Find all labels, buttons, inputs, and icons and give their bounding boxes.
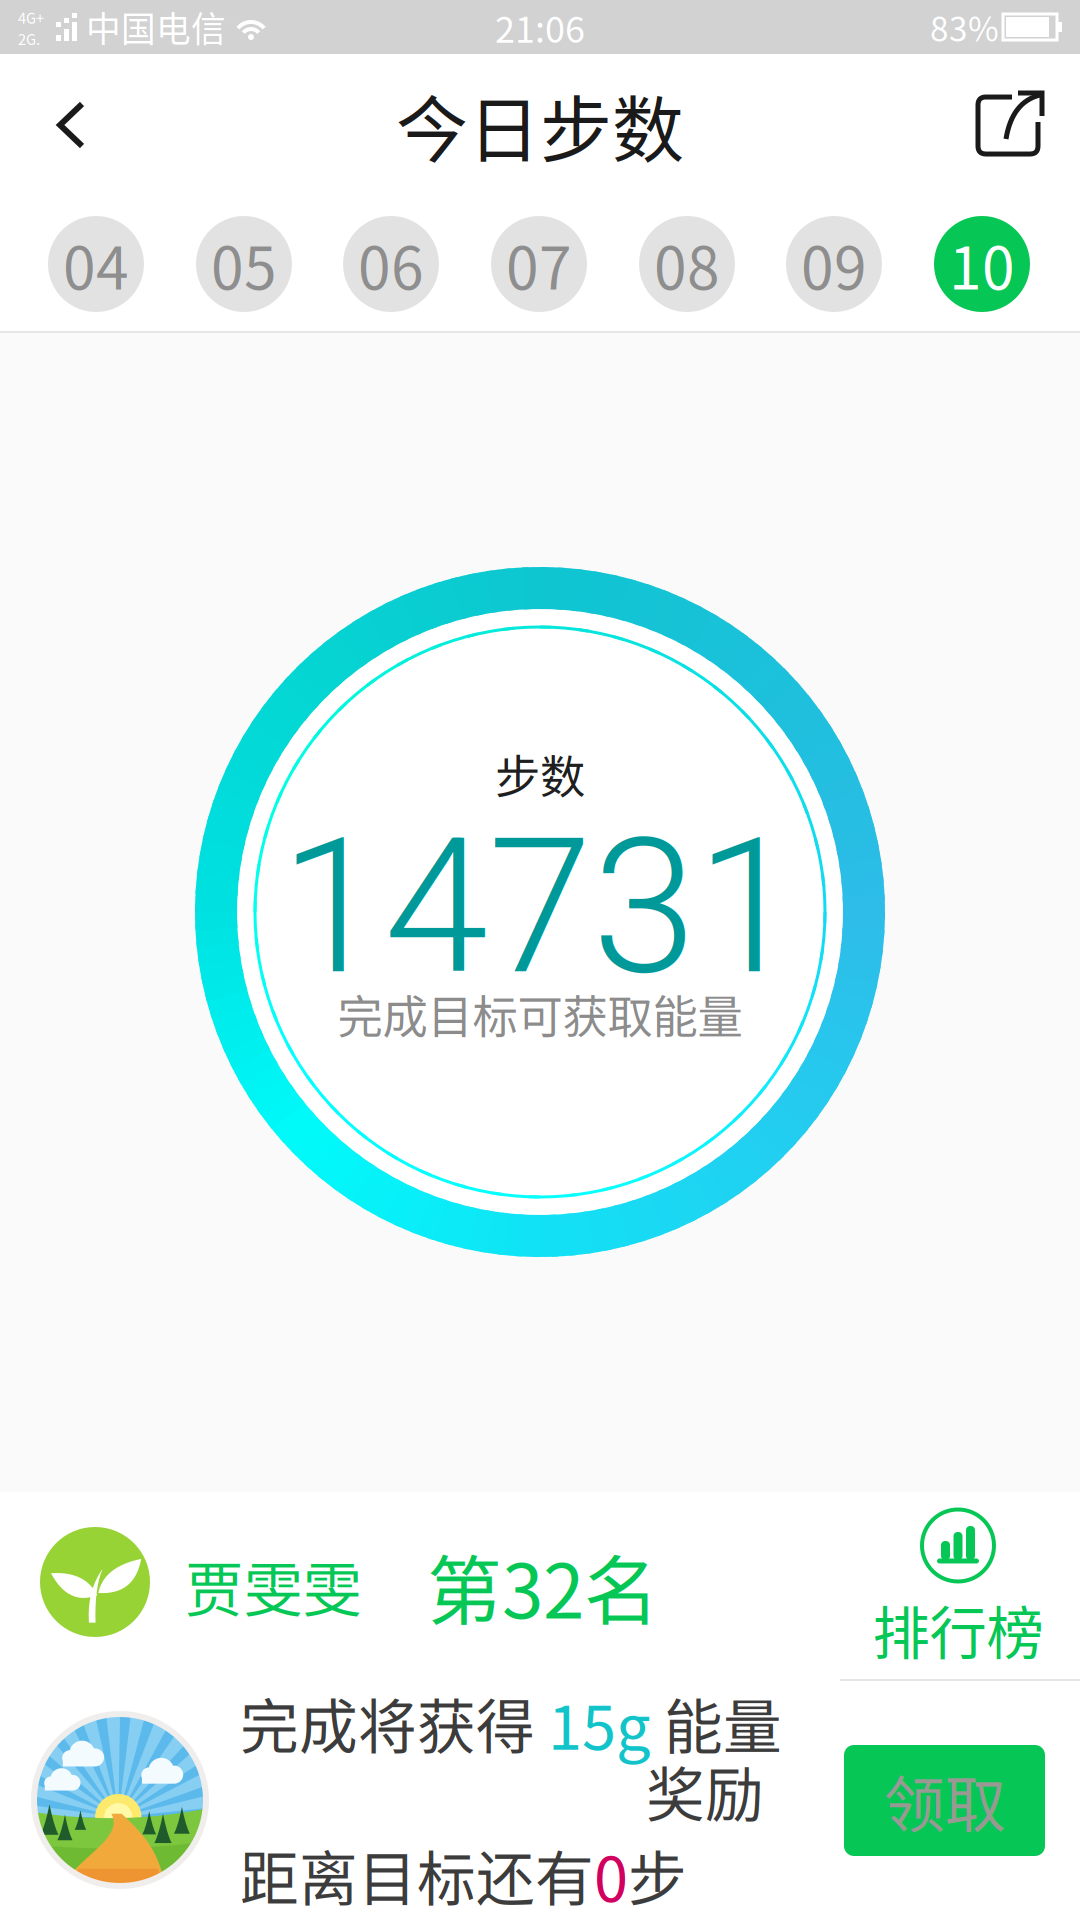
- staticText: 今日步数: [396, 72, 684, 177]
- staticText: 排行榜: [872, 1587, 1043, 1670]
- staticText: 距离目标还有: [240, 1832, 594, 1917]
- staticText: 奖励: [646, 1748, 764, 1833]
- staticText: 4G+: [18, 7, 44, 28]
- button[interactable]: 贾雯雯: [0, 1492, 840, 1683]
- button[interactable]: 09: [786, 216, 882, 312]
- button[interactable]: 07: [491, 216, 587, 312]
- button[interactable]: Back: [0, 54, 150, 195]
- staticText: 14731: [280, 797, 800, 1017]
- staticText: 2G.: [18, 28, 40, 49]
- staticText: 领取: [883, 1756, 1005, 1845]
- button[interactable]: 排行榜: [868, 1498, 1048, 1678]
- staticText: 07: [506, 221, 572, 306]
- button[interactable]: 完成将获得: [0, 1685, 820, 1920]
- button[interactable]: 领取: [844, 1745, 1045, 1856]
- button[interactable]: 06: [343, 216, 439, 312]
- staticText: 09: [801, 221, 867, 306]
- staticText: 10: [949, 221, 1015, 306]
- staticText: 21:06: [495, 1, 585, 53]
- staticText: 完成目标可获取能量: [337, 981, 742, 1047]
- staticText: 步: [628, 1832, 687, 1917]
- button[interactable]: Share: [950, 54, 1080, 195]
- staticText: 0: [594, 1831, 628, 1919]
- button[interactable]: 08: [639, 216, 735, 312]
- staticText: 完成将获得: [240, 1680, 548, 1765]
- staticText: 第32名: [427, 1532, 659, 1640]
- button[interactable]: 04: [48, 216, 144, 312]
- staticText: 06: [358, 221, 424, 306]
- staticText: 步数: [495, 741, 585, 807]
- button[interactable]: 10: [934, 216, 1030, 312]
- staticText: 05: [211, 221, 277, 306]
- staticText: 中国电信: [86, 2, 226, 52]
- staticText: 83%: [930, 3, 999, 51]
- staticText: 能量: [651, 1680, 782, 1765]
- staticText: 15g: [548, 1679, 651, 1767]
- staticText: 贾雯雯: [185, 1543, 362, 1628]
- button[interactable]: 05: [196, 216, 292, 312]
- staticText: 04: [63, 221, 129, 306]
- staticText: 08: [654, 221, 720, 306]
